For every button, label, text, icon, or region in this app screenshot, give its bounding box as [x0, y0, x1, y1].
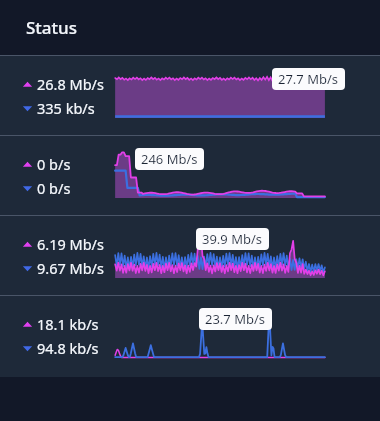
- button[interactable]: 18.1 kb/s: [0, 296, 380, 376]
- staticText: Status: [26, 16, 78, 39]
- staticText: 27.7 Mb/s: [278, 70, 339, 88]
- staticText: 26.8 Mb/s: [37, 74, 104, 94]
- staticText: 0 b/s: [37, 154, 71, 174]
- button[interactable]: 246 Mb/s: [135, 148, 204, 170]
- staticText: 9.67 Mb/s: [37, 258, 104, 278]
- staticText: 23.7 Mb/s: [205, 310, 266, 328]
- button[interactable]: 6.19 Mb/s: [0, 216, 380, 296]
- staticText: 335 kb/s: [37, 98, 95, 118]
- staticText: 0 b/s: [37, 178, 71, 198]
- button[interactable]: 39.9 Mb/s: [196, 228, 269, 250]
- staticText: 39.9 Mb/s: [202, 230, 263, 248]
- staticText: 18.1 kb/s: [37, 314, 99, 334]
- button[interactable]: 27.7 Mb/s: [272, 68, 345, 90]
- staticText: 246 Mb/s: [141, 150, 198, 168]
- staticText: 94.8 kb/s: [37, 338, 99, 358]
- staticText: 6.19 Mb/s: [37, 234, 104, 254]
- button[interactable]: 0 b/s: [0, 136, 380, 216]
- button[interactable]: 23.7 Mb/s: [199, 308, 272, 330]
- button[interactable]: 26.8 Mb/s: [0, 56, 380, 136]
